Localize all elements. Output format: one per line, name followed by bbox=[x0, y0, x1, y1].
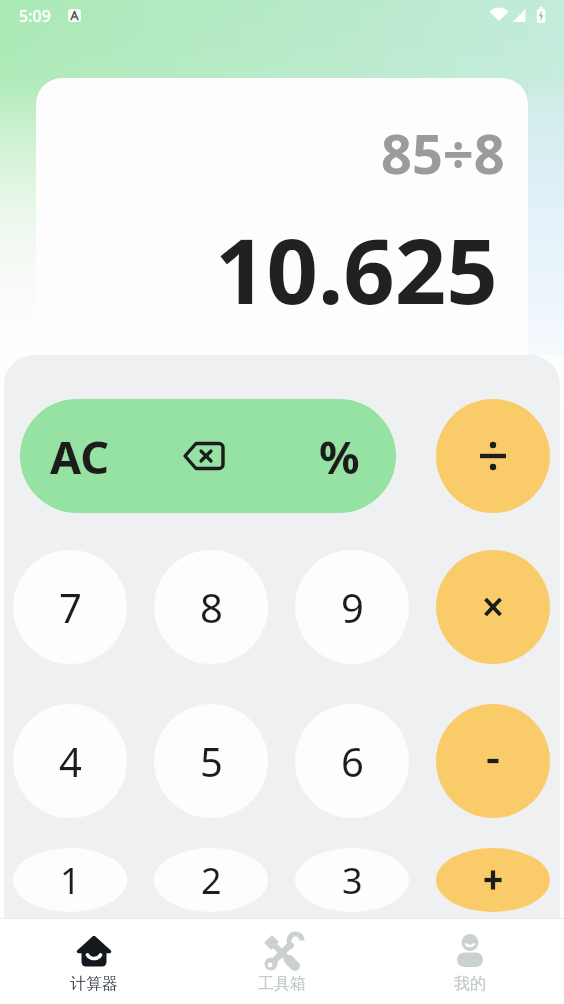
button[interactable]: 4 bbox=[13, 704, 127, 818]
staticText: AC bbox=[50, 426, 110, 487]
button[interactable] bbox=[436, 550, 550, 664]
staticText: 工具箱 bbox=[258, 974, 306, 994]
button[interactable]: 我的 bbox=[410, 918, 530, 1004]
staticText: 我的 bbox=[454, 974, 486, 994]
button[interactable]: 工具箱 bbox=[222, 918, 342, 1004]
button[interactable] bbox=[436, 399, 550, 513]
button[interactable] bbox=[436, 704, 550, 818]
staticText: 6 bbox=[341, 734, 364, 788]
staticText: 5:09 bbox=[19, 5, 51, 27]
staticText: 1 bbox=[60, 856, 81, 905]
button[interactable]: 3 bbox=[295, 848, 409, 912]
button[interactable] bbox=[156, 399, 251, 513]
staticText: 3 bbox=[342, 856, 363, 905]
staticText: 2 bbox=[201, 856, 222, 905]
staticText: 计算器 bbox=[70, 974, 118, 994]
button[interactable]: AC bbox=[32, 399, 127, 513]
staticText: 85÷8 bbox=[381, 116, 505, 190]
button[interactable]: 1 bbox=[13, 848, 127, 912]
button[interactable]: 9 bbox=[295, 550, 409, 664]
staticText: 10.625 bbox=[215, 208, 498, 331]
button[interactable]: 2 bbox=[154, 848, 268, 912]
button[interactable] bbox=[436, 848, 550, 912]
button[interactable]: 5 bbox=[154, 704, 268, 818]
staticText: 4 bbox=[59, 734, 82, 788]
staticText: 8 bbox=[200, 580, 223, 634]
button[interactable]: 8 bbox=[154, 550, 268, 664]
button[interactable]: 计算器 bbox=[34, 918, 154, 1004]
button[interactable]: % bbox=[292, 399, 387, 513]
staticText: % bbox=[319, 426, 360, 487]
button[interactable]: 6 bbox=[295, 704, 409, 818]
button[interactable]: 7 bbox=[13, 550, 127, 664]
staticText: 9 bbox=[341, 580, 364, 634]
staticText: 7 bbox=[59, 580, 82, 634]
staticText: 5 bbox=[200, 734, 223, 788]
